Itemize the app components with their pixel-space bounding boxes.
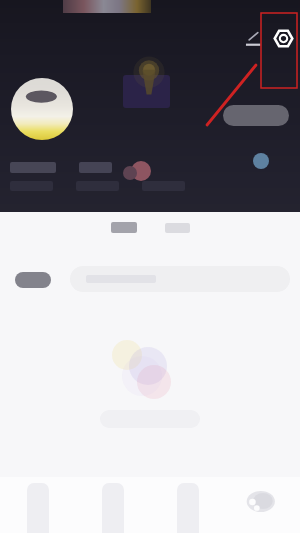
button[interactable]: Verified badge	[253, 153, 269, 169]
button[interactable]: Settings	[271, 26, 296, 51]
button[interactable]: Search	[70, 266, 290, 292]
button[interactable]: Profile avatar	[11, 78, 73, 140]
button[interactable]: Badge card	[123, 75, 170, 108]
button[interactable]: Tab one	[111, 222, 137, 233]
button[interactable]: Home	[0, 477, 75, 533]
button[interactable]: Action	[223, 105, 289, 126]
button[interactable]: Profile	[225, 477, 300, 533]
button[interactable]: Explore	[75, 477, 150, 533]
button[interactable]: Edit profile	[240, 25, 265, 50]
button[interactable]: Library	[150, 477, 225, 533]
button[interactable]: Filter	[15, 272, 51, 288]
